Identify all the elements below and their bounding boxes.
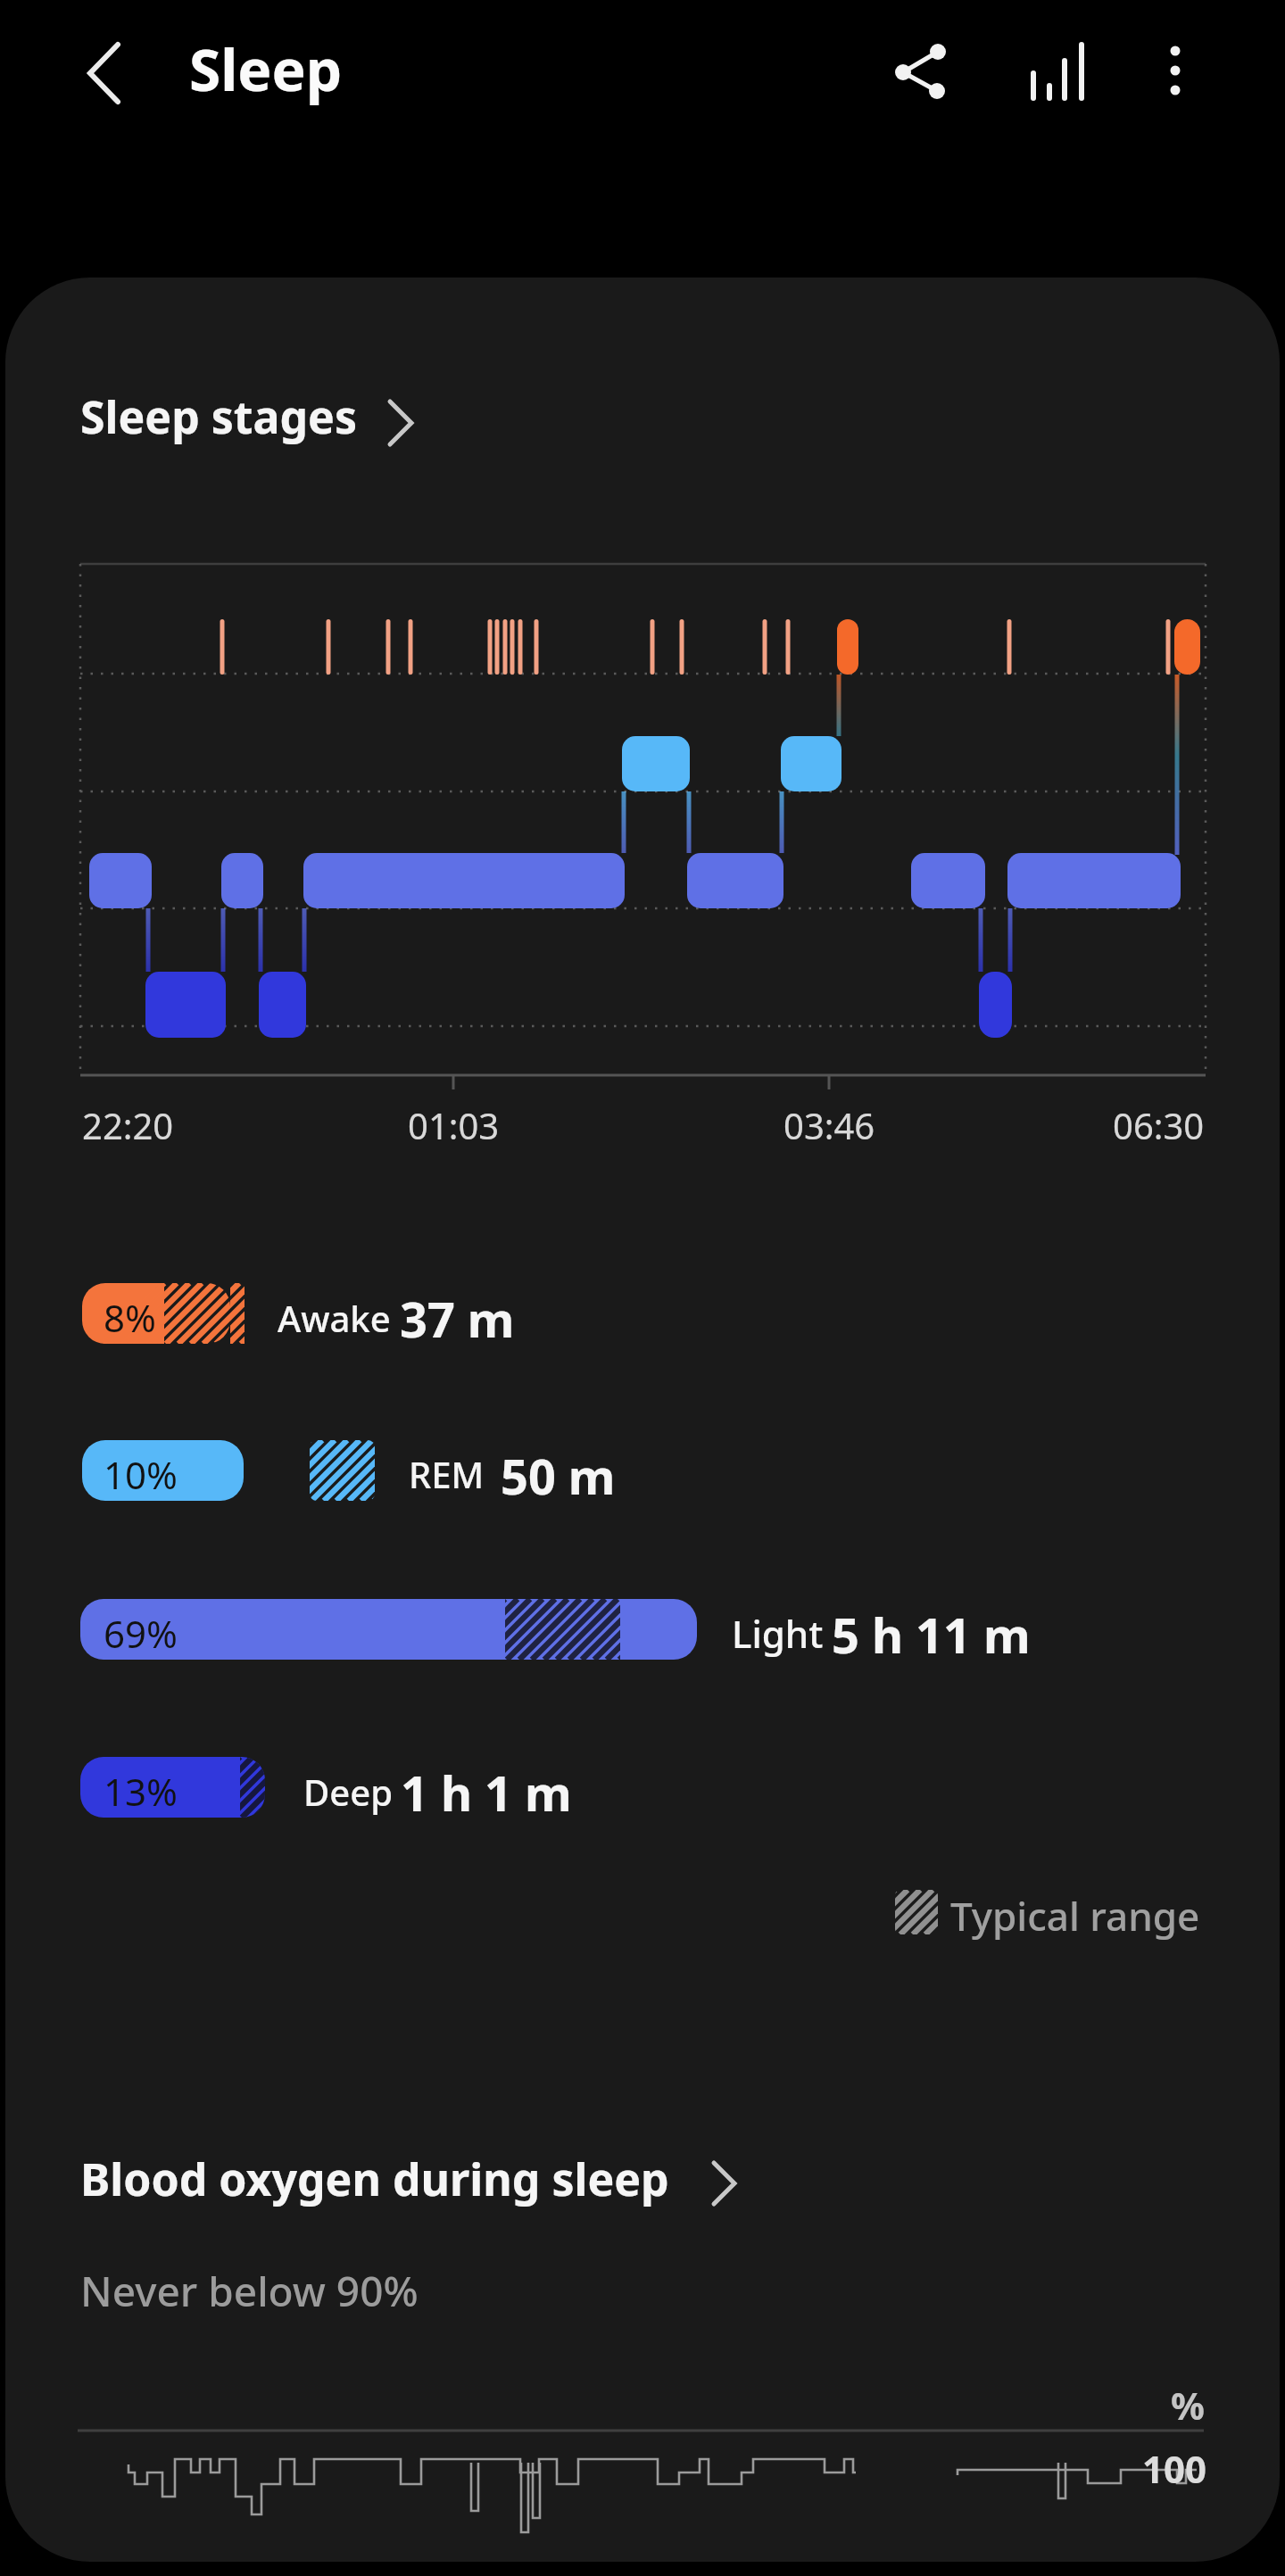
staticText: %	[1171, 2380, 1205, 2431]
staticText: 50 m	[501, 1443, 616, 1509]
staticText: 8%	[104, 1292, 156, 1343]
staticText: Sleep stages	[80, 386, 358, 447]
staticText: 1 h 1 m	[401, 1760, 572, 1826]
staticText: Deep	[303, 1768, 393, 1816]
staticText: Blood oxygen during sleep	[80, 2149, 669, 2209]
staticText: REM	[409, 1450, 485, 1498]
staticText: Sleep	[189, 30, 343, 108]
staticText: Light	[732, 1608, 824, 1659]
staticText: 06:30	[1113, 1101, 1205, 1149]
staticText: 5 h 11 m	[832, 1602, 1031, 1668]
staticText: Never below 90%	[80, 2263, 419, 2319]
staticText: 01:03	[408, 1101, 500, 1149]
staticText: 100	[1142, 2443, 1207, 2494]
button[interactable]	[875, 36, 955, 107]
staticText: 69%	[104, 1608, 178, 1659]
staticText: 03:46	[783, 1101, 875, 1149]
button[interactable]	[71, 2137, 750, 2226]
staticText: Typical range	[950, 1889, 1200, 1942]
staticText: 13%	[104, 1766, 178, 1817]
staticText: 37 m	[400, 1286, 515, 1352]
button[interactable]	[71, 370, 428, 468]
staticText: 10%	[104, 1449, 178, 1500]
button[interactable]	[1013, 36, 1102, 107]
staticText: Awake	[278, 1294, 391, 1342]
button[interactable]	[1147, 36, 1209, 107]
staticText: 22:20	[82, 1101, 174, 1149]
button[interactable]	[71, 36, 134, 111]
